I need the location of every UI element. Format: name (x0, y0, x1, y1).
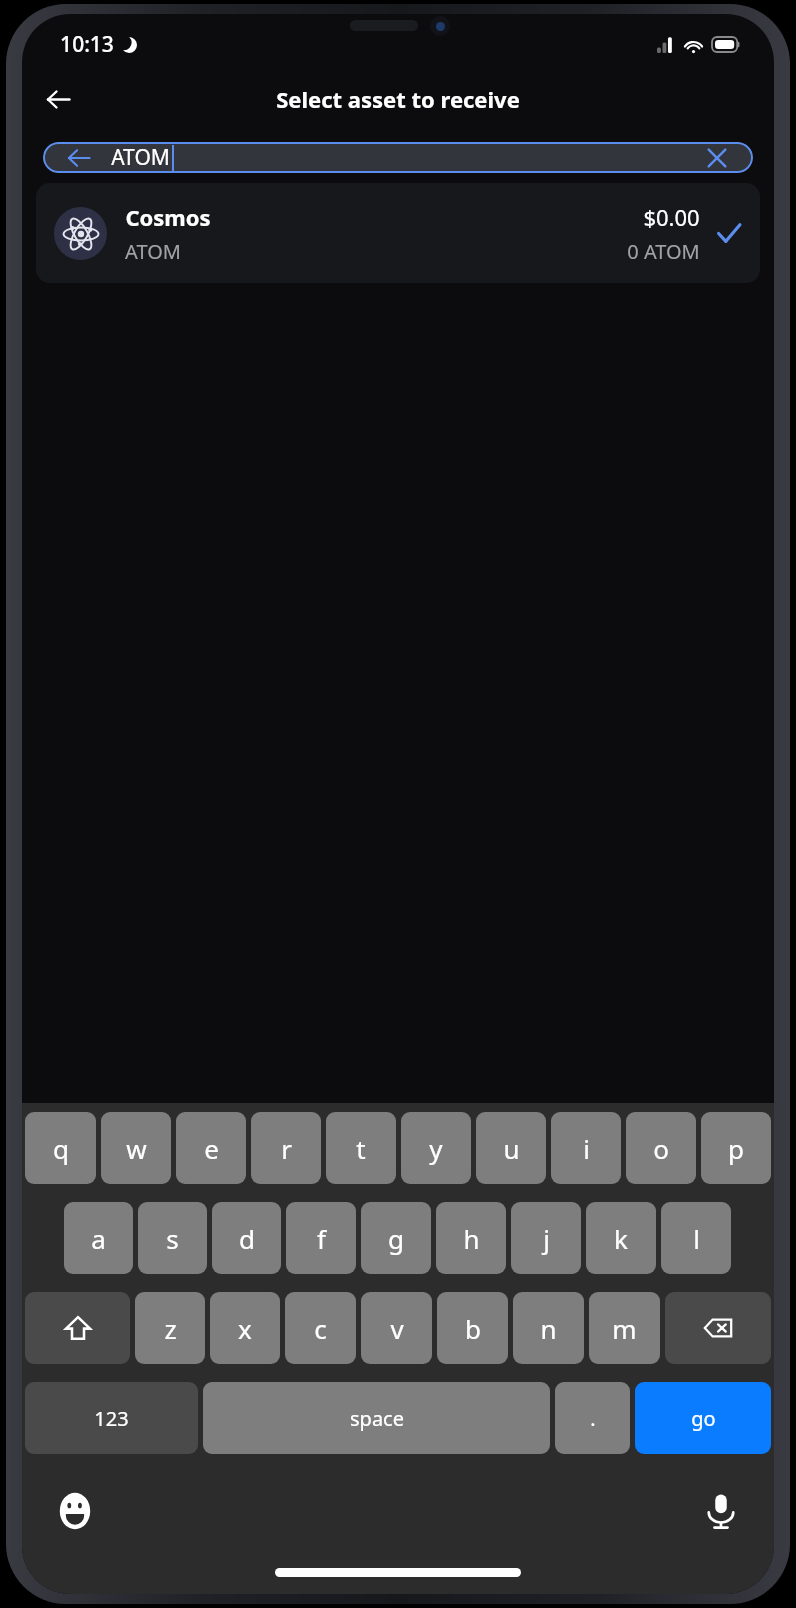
staticText: c (314, 1311, 327, 1346)
button[interactable]: i (551, 1112, 621, 1184)
button[interactable]: m (589, 1292, 660, 1364)
staticText: 0 ATOM (627, 238, 700, 265)
staticText: y (429, 1131, 443, 1166)
staticText: u (503, 1131, 520, 1166)
button[interactable]: Back (34, 75, 82, 123)
staticText: q (53, 1131, 69, 1166)
staticText: 123 (94, 1405, 129, 1432)
staticText: z (164, 1311, 177, 1346)
staticText: r (281, 1131, 292, 1166)
button[interactable]: j (511, 1202, 581, 1274)
staticText: v (390, 1311, 404, 1346)
staticText: g (388, 1221, 404, 1256)
button[interactable]: b (437, 1292, 508, 1364)
staticText: s (166, 1221, 179, 1256)
button[interactable]: g (361, 1202, 431, 1274)
staticText: j (543, 1221, 550, 1256)
staticText: i (583, 1131, 590, 1166)
staticText: t (356, 1131, 366, 1166)
staticText: l (693, 1221, 700, 1256)
button[interactable]: s (138, 1202, 207, 1274)
staticText: o (653, 1131, 669, 1166)
button[interactable]: w (101, 1112, 171, 1184)
staticText: 10:13 (60, 30, 114, 59)
button[interactable]: a (64, 1202, 133, 1274)
button[interactable]: Clear (697, 142, 737, 173)
staticText: . (590, 1405, 596, 1432)
staticText: k (614, 1221, 628, 1256)
button[interactable]: e (176, 1112, 246, 1184)
button[interactable]: go (635, 1382, 771, 1454)
button[interactable]: c (285, 1292, 356, 1364)
staticText: x (238, 1311, 252, 1346)
button[interactable]: t (326, 1112, 396, 1184)
button[interactable]: y (401, 1112, 471, 1184)
button[interactable]: q (25, 1112, 96, 1184)
staticText: $0.00 (643, 202, 700, 232)
button[interactable]: k (586, 1202, 656, 1274)
button[interactable]: . (555, 1382, 630, 1454)
staticText: go (691, 1405, 716, 1432)
staticText: n (540, 1311, 557, 1346)
staticText: e (204, 1131, 219, 1166)
button[interactable]: n (513, 1292, 584, 1364)
button[interactable]: z (135, 1292, 205, 1364)
button[interactable]: space (203, 1382, 550, 1454)
staticText: p (728, 1131, 744, 1166)
staticText: Cosmos (125, 202, 211, 232)
staticText: w (126, 1131, 147, 1166)
button[interactable]: Back (43, 142, 753, 173)
button[interactable]: l (661, 1202, 731, 1274)
button[interactable]: u (476, 1112, 546, 1184)
button[interactable]: p (701, 1112, 771, 1184)
button[interactable]: Backspace (665, 1292, 771, 1364)
button[interactable]: f (286, 1202, 356, 1274)
button[interactable]: Back (59, 142, 99, 173)
button[interactable]: Voice input (694, 1484, 748, 1538)
staticText: d (239, 1221, 255, 1256)
staticText: ATOM (125, 238, 181, 265)
button[interactable]: h (436, 1202, 506, 1274)
staticText: f (317, 1221, 326, 1256)
button[interactable]: Emoji (48, 1484, 102, 1538)
button[interactable]: d (212, 1202, 281, 1274)
button[interactable]: Cosmos (36, 183, 760, 283)
staticText: b (465, 1311, 481, 1346)
staticText: h (463, 1221, 480, 1256)
staticText: space (350, 1405, 404, 1432)
staticText: Select asset to receive (276, 84, 520, 114)
button[interactable]: x (210, 1292, 280, 1364)
staticText: m (612, 1311, 637, 1346)
button[interactable]: 123 (25, 1382, 198, 1454)
staticText: ATOM (111, 143, 170, 172)
staticText: a (91, 1221, 106, 1256)
button[interactable]: Shift (25, 1292, 130, 1364)
button[interactable]: o (626, 1112, 696, 1184)
button[interactable]: v (361, 1292, 432, 1364)
button[interactable]: r (251, 1112, 321, 1184)
